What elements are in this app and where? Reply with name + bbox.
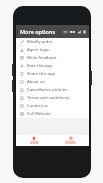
- button[interactable]: Share this app: [16, 70, 89, 78]
- staticText: Agent login: [27, 47, 50, 53]
- staticText: Modify order: [27, 39, 53, 45]
- staticText: About us: [27, 79, 45, 85]
- staticText: Full Website: [27, 111, 51, 117]
- staticText: HOME: [30, 141, 39, 145]
- button[interactable]: Modify order: [16, 38, 89, 46]
- staticText: Terms and conditions: [27, 95, 70, 101]
- button[interactable]: Rate this app: [16, 62, 89, 70]
- button[interactable]: Terms and conditions: [16, 94, 89, 102]
- staticText: Rate this app: [27, 63, 53, 69]
- button[interactable]: Contact us: [16, 102, 89, 110]
- button[interactable]: Agent login: [16, 46, 89, 54]
- button[interactable]: HOME: [16, 135, 52, 146]
- button[interactable]: Cancellation policies: [16, 86, 89, 94]
- button[interactable]: Full Website: [16, 110, 89, 118]
- staticText: More options: [20, 28, 56, 35]
- button[interactable]: About us: [16, 78, 89, 86]
- button[interactable]: Write feedback: [16, 54, 89, 62]
- staticText: Cancellation policies: [27, 87, 67, 93]
- staticText: ORDERS: [65, 141, 76, 145]
- button[interactable]: ORDERS: [52, 135, 89, 146]
- staticText: Contact us: [27, 103, 48, 109]
- staticText: Write feedback: [27, 55, 57, 61]
- staticText: Share this app: [27, 71, 56, 77]
